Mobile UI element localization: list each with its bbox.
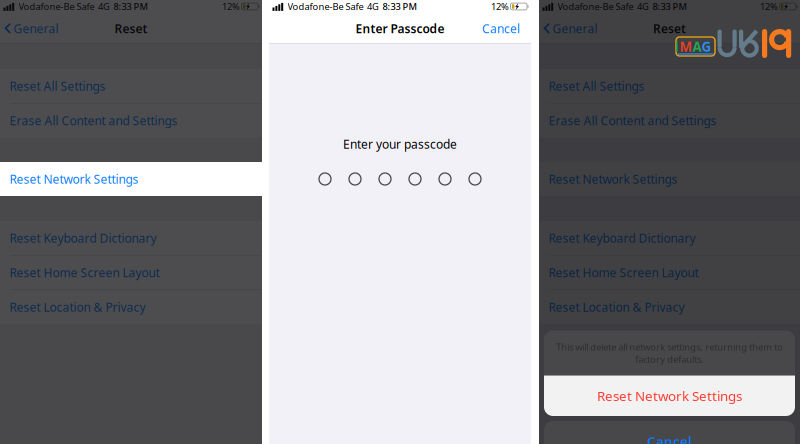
button[interactable]: Reset Location & Privacy — [0, 290, 262, 324]
staticText: Erase All Content and Settings — [9, 113, 177, 128]
staticText: 12% — [222, 0, 240, 13]
staticText: Reset Keyboard Dictionary — [9, 230, 156, 246]
button[interactable]: Reset Location & Privacy — [539, 290, 800, 324]
staticText: Reset Keyboard Dictionary — [548, 230, 695, 246]
staticText: G — [701, 38, 711, 55]
staticText: Reset Location & Privacy — [548, 299, 684, 315]
staticText: 8:33 PM — [652, 0, 687, 13]
button[interactable]: Reset Network Settings — [544, 375, 795, 416]
staticText: Cancel — [482, 20, 520, 36]
staticText: 4G — [637, 0, 649, 13]
staticText: 4G — [367, 0, 379, 13]
staticText: Reset Network Settings — [548, 171, 677, 187]
button[interactable]: Reset Home Screen Layout — [0, 256, 262, 290]
button[interactable]: Reset Network Settings — [0, 162, 262, 196]
staticText: Enter Passcode — [355, 20, 444, 36]
button[interactable]: Reset Network Settings — [539, 162, 800, 196]
button[interactable]: Erase All Content and Settings — [539, 104, 800, 138]
staticText: Vodafone-Be Safe — [18, 0, 94, 13]
staticText: 4G — [98, 0, 110, 13]
staticText: 12% — [491, 0, 509, 13]
button[interactable]: Reset All Settings — [0, 69, 262, 103]
staticText: Cancel — [647, 432, 692, 444]
button[interactable]: General — [539, 14, 597, 42]
staticText: 8:33 PM — [382, 0, 417, 13]
button[interactable]: Cancel — [544, 421, 795, 444]
button[interactable]: Reset All Settings — [539, 69, 800, 103]
button[interactable]: Reset Keyboard Dictionary — [539, 221, 800, 255]
button[interactable]: Reset Keyboard Dictionary — [0, 221, 262, 255]
staticText: Reset Network Settings — [597, 387, 742, 405]
staticText: 8:33 PM — [113, 0, 148, 13]
staticText: Enter your passcode — [343, 136, 457, 152]
button[interactable]: Cancel — [482, 14, 531, 42]
staticText: Reset Network Settings — [9, 171, 138, 187]
staticText: Reset Network Settings — [9, 171, 138, 187]
staticText: Reset Home Screen Layout — [9, 265, 159, 280]
staticText: Vodafone-Be Safe — [287, 0, 363, 13]
staticText: Erase All Content and Settings — [548, 113, 716, 128]
button[interactable]: Erase All Content and Settings — [0, 104, 262, 138]
staticText: Reset — [114, 20, 147, 36]
button[interactable]: Reset Network Settings — [0, 162, 262, 196]
staticText: Reset All Settings — [548, 78, 644, 94]
staticText: 12% — [760, 0, 778, 13]
staticText: M — [679, 38, 692, 55]
staticText: Vodafone-Be Safe — [557, 0, 633, 13]
staticText: This will delete all network settings, r… — [556, 341, 783, 365]
staticText: General — [13, 20, 58, 36]
staticText: Reset — [653, 20, 686, 36]
staticText: Reset Home Screen Layout — [548, 265, 698, 280]
button[interactable]: General — [0, 14, 58, 42]
staticText: Reset Location & Privacy — [9, 299, 145, 315]
staticText: General — [552, 20, 597, 36]
button[interactable]: Reset Home Screen Layout — [539, 256, 800, 290]
staticText: A — [692, 38, 701, 55]
staticText: Reset All Settings — [9, 78, 105, 94]
